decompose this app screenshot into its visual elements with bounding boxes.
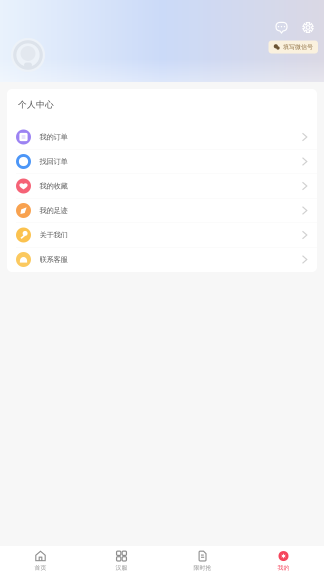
staticText: 关于我们 [39,230,67,240]
button[interactable]: 联系客服 [7,247,317,272]
button[interactable]: Messages [273,19,289,35]
staticText: 找回订单 [39,157,67,166]
staticText: 我的 [277,564,289,571]
button[interactable]: 我的订单 [7,125,317,149]
button[interactable]: 我的收藏 [7,174,317,198]
button[interactable]: 关于我们 [7,223,317,247]
button[interactable]: 限时抢 [162,551,243,571]
button[interactable]: 我的足迹 [7,198,317,223]
button[interactable]: 首页 [0,551,81,571]
staticText: 我的收藏 [39,181,67,191]
staticText: 我的订单 [39,132,67,142]
staticText: 填写微信号 [283,43,313,51]
staticText: 联系客服 [39,255,67,264]
button[interactable]: 填写微信号 [268,40,318,53]
staticText: 汉服 [115,564,127,571]
staticText: 限时抢 [193,564,211,571]
button[interactable]: 我的 [243,551,324,571]
staticText: 首页 [34,564,46,571]
staticText: 我的足迹 [39,206,67,215]
button[interactable]: 汉服 [81,551,162,571]
button[interactable]: 找回订单 [7,149,317,174]
staticText: 个人中心 [18,99,54,110]
button[interactable]: Settings [300,19,316,35]
